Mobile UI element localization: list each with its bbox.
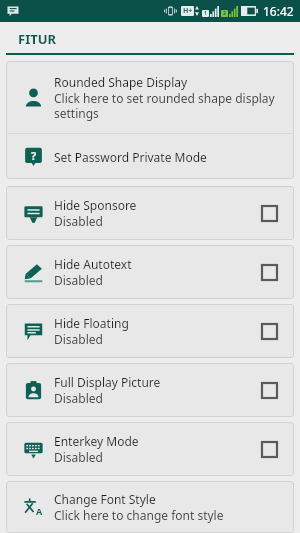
staticText: Disabled	[54, 213, 103, 229]
staticText: Disabled	[54, 272, 103, 288]
staticText: 16:42	[263, 3, 294, 19]
staticText: Rounded Shape Display	[54, 74, 188, 90]
staticText: Change Font Style	[54, 491, 156, 507]
staticText: Hide Floating	[54, 315, 129, 331]
staticText: Disabled	[54, 449, 103, 465]
staticText: Hide Sponsore	[54, 197, 137, 213]
button[interactable]: Hide Autotext	[6, 245, 294, 299]
button[interactable]: Hide Floating	[6, 304, 294, 358]
staticText: 1	[204, 10, 207, 17]
button[interactable]: ?	[6, 134, 294, 179]
button[interactable]: Enterkey Mode	[6, 422, 294, 476]
button[interactable]: Hide Sponsore	[6, 186, 294, 240]
staticText: H+	[183, 6, 193, 16]
staticText: 2	[223, 10, 226, 17]
button[interactable]: Toggle Hide Autotext	[254, 257, 284, 287]
button[interactable]: A	[6, 481, 294, 533]
staticText: Disabled	[54, 390, 103, 406]
staticText: Click here to set rounded shape display …	[54, 90, 284, 121]
staticText: A	[36, 505, 43, 517]
staticText: Disabled	[54, 331, 103, 347]
button[interactable]: Rounded Shape Display	[6, 61, 294, 133]
staticText: Enterkey Mode	[54, 433, 139, 449]
button[interactable]: Toggle Enterkey Mode	[254, 434, 284, 464]
button[interactable]: Toggle Full Display Picture	[254, 375, 284, 405]
staticText: FITUR	[18, 30, 57, 48]
staticText: Set Password Private Mode	[54, 149, 207, 165]
staticText: Hide Autotext	[54, 256, 132, 272]
button[interactable]: Toggle Hide Sponsore	[254, 198, 284, 228]
staticText: Full Display Picture	[54, 374, 161, 390]
staticText: Click here to change font style	[54, 507, 224, 523]
button[interactable]: Toggle Hide Floating	[254, 316, 284, 346]
staticText: ?	[31, 148, 37, 163]
button[interactable]: Full Display Picture	[6, 363, 294, 417]
